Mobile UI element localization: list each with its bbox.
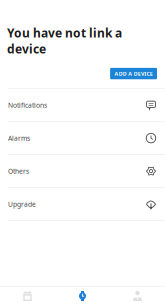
button[interactable]: Notifications <box>0 89 165 122</box>
staticText: Alarms <box>8 134 30 143</box>
staticText: ADD A DEVICE <box>114 70 153 77</box>
button[interactable]: Watch <box>55 287 110 305</box>
staticText: Notifications <box>8 101 47 110</box>
button[interactable]: Alarms <box>0 122 165 155</box>
button[interactable]: Upgrade <box>0 188 165 221</box>
button[interactable]: Others <box>0 155 165 188</box>
button[interactable]: Profile <box>110 287 165 305</box>
staticText: Upgrade <box>8 200 36 209</box>
button[interactable]: ADD A DEVICE <box>110 68 157 79</box>
staticText: You have not link a device <box>7 25 122 57</box>
staticText: Others <box>8 167 29 176</box>
button[interactable]: Devices <box>0 287 55 305</box>
